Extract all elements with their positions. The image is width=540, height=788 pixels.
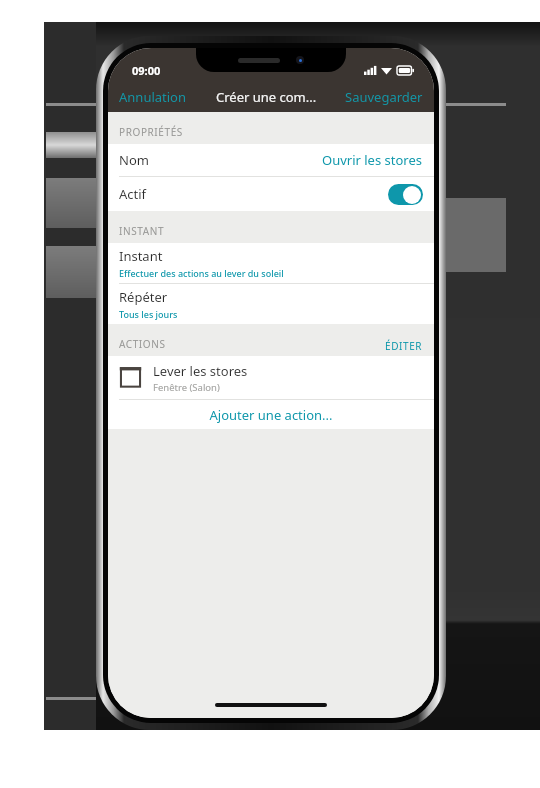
button[interactable]: Lever les stores (108, 356, 434, 399)
staticText: Créer une com... (216, 88, 317, 106)
button[interactable]: Ajouter une action... (108, 400, 434, 429)
staticText: Instant (119, 247, 163, 265)
button[interactable]: Annulation (108, 86, 193, 110)
button[interactable]: Actif (388, 184, 423, 205)
button[interactable]: Nom (108, 144, 434, 176)
staticText: Actif (119, 185, 147, 203)
button[interactable]: Répéter (108, 284, 434, 324)
button[interactable]: Actif (108, 177, 434, 211)
staticText: ÉDITER (385, 339, 423, 353)
staticText: 09:00 (132, 63, 161, 78)
staticText: Lever les stores (153, 362, 248, 380)
staticText: INSTANT (119, 224, 165, 238)
staticText: PROPRIÉTÉS (119, 125, 183, 139)
staticText: Effectuer des actions au lever du soleil (119, 267, 284, 279)
staticText: Ajouter une action... (209, 406, 333, 424)
button[interactable]: Sauvegarder (339, 86, 434, 110)
staticText: Répéter (119, 288, 168, 306)
staticText: Fenêtre (Salon) (153, 381, 220, 394)
staticText: Annulation (119, 88, 187, 106)
button[interactable]: Instant (108, 243, 434, 283)
staticText: Ouvrir les stores (322, 151, 423, 169)
staticText: Nom (119, 151, 149, 169)
staticText: ACTIONS (119, 337, 166, 351)
staticText: Tous les jours (119, 308, 178, 320)
staticText: Sauvegarder (345, 88, 423, 106)
button[interactable]: ÉDITER (375, 333, 434, 356)
